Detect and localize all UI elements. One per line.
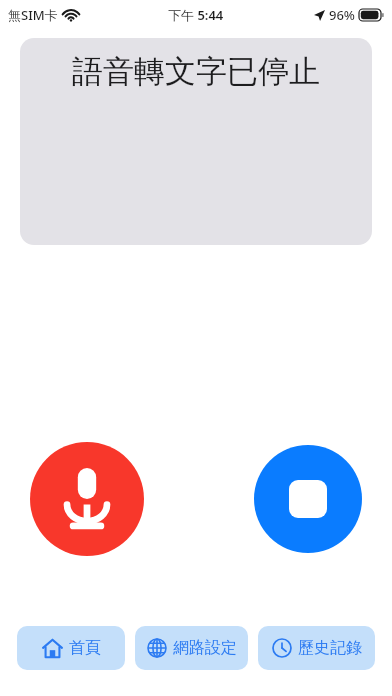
button[interactable]: 歷史記錄 (258, 626, 375, 670)
button[interactable]: 開始錄音 (30, 442, 144, 556)
staticText: 首頁 (69, 638, 101, 658)
button[interactable]: 語音轉文字已停止 (20, 38, 372, 245)
button[interactable]: 首頁 (17, 626, 125, 670)
staticText: 語音轉文字已停止 (28, 52, 364, 91)
staticText: 96% (329, 6, 355, 24)
staticText: 下午 5:44 (168, 6, 224, 24)
staticText: 歷史記錄 (298, 638, 362, 658)
button[interactable]: 停止錄音 (254, 445, 362, 553)
staticText: 無SIM卡 (8, 6, 58, 24)
staticText: 網路設定 (173, 638, 237, 658)
button[interactable]: 網路設定 (135, 626, 248, 670)
